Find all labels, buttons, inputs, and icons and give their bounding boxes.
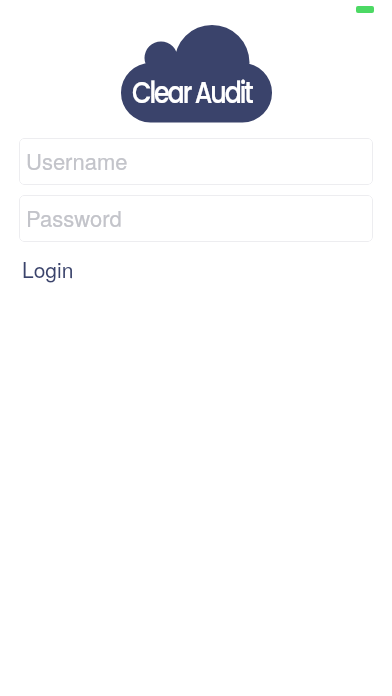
other: Battery full: [356, 6, 374, 13]
staticText: Login: [22, 254, 74, 284]
button[interactable]: Username: [19, 138, 373, 185]
staticText: Username: [26, 145, 128, 177]
staticText: Clear Audit: [132, 72, 252, 114]
button[interactable]: Password: [19, 195, 373, 242]
other: Clear Audit logo: [118, 21, 276, 129]
staticText: Password: [26, 202, 122, 234]
button[interactable]: Login: [16, 248, 80, 290]
